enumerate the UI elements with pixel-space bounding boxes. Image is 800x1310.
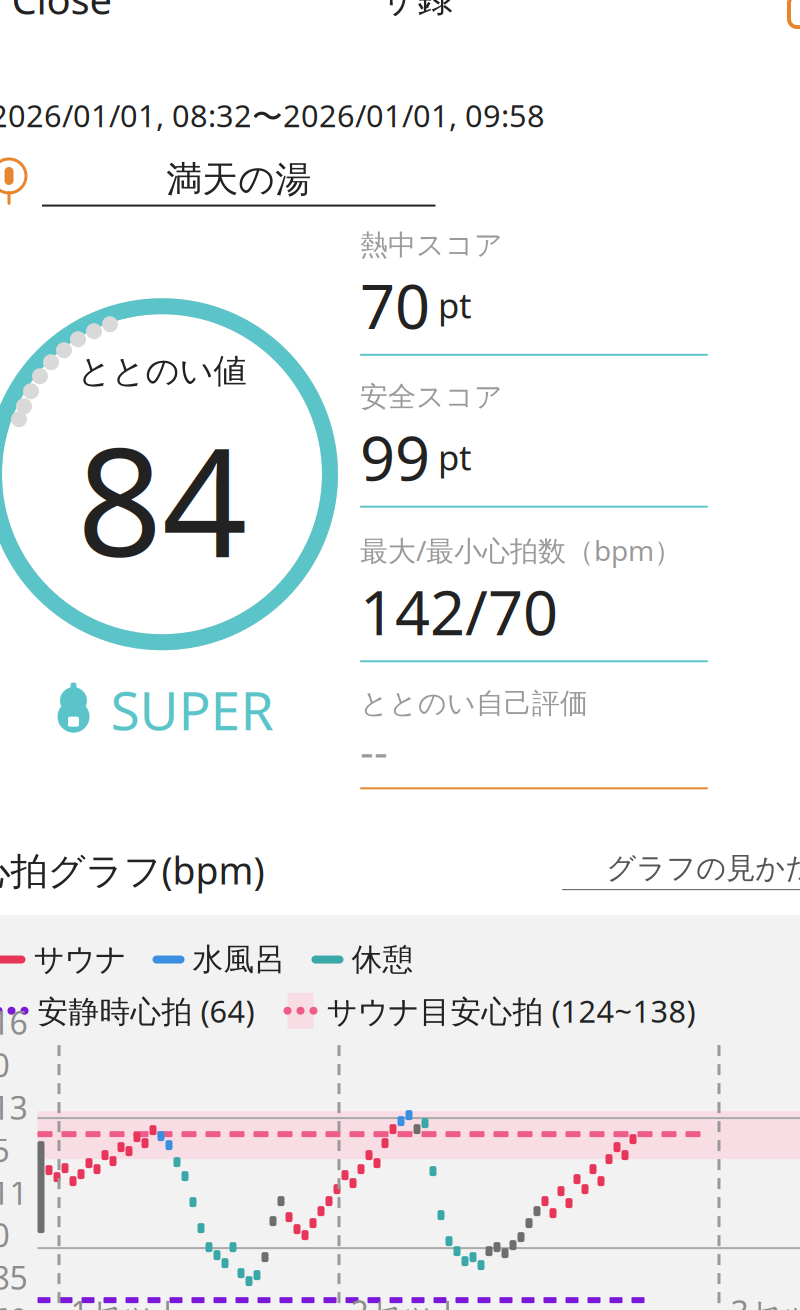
staticText: 3セット xyxy=(730,1291,800,1310)
button[interactable]: 満天の湯 xyxy=(42,157,435,207)
staticText: 85 xyxy=(0,1256,27,1299)
staticText: 安静時心拍 (64) xyxy=(37,990,254,1031)
button[interactable]: グラフの見かた xyxy=(562,850,800,890)
staticText: 2セット xyxy=(350,1291,467,1310)
staticText: 心拍グラフ(bpm) xyxy=(0,845,264,895)
staticText: 99 xyxy=(360,416,430,498)
staticText: pt xyxy=(438,282,472,328)
staticText: 熱中スコア xyxy=(360,228,503,262)
button[interactable]: Close xyxy=(0,0,142,43)
staticText: 水風呂 xyxy=(192,941,285,978)
staticText: 142/70 xyxy=(360,571,558,652)
staticText: ととのい自己評価 xyxy=(360,686,588,721)
staticText: Close xyxy=(11,0,112,26)
staticText: 最大/最小心拍数（bpm） xyxy=(360,532,682,569)
staticText: ととのい値 xyxy=(77,351,246,391)
staticText: 満天の湯 xyxy=(166,157,311,202)
staticText: グラフの見かた xyxy=(606,850,800,886)
staticText: 2026/01/01, 08:32〜2026/01/01, 09:58 xyxy=(0,95,545,136)
staticText: サウナ目安心拍 (124~138) xyxy=(326,990,695,1031)
staticText: サウナ xyxy=(33,941,126,978)
staticText: 安全スコア xyxy=(360,380,503,414)
staticText: SUPER xyxy=(110,674,273,745)
button[interactable]: Share xyxy=(763,0,800,43)
staticText: 84 xyxy=(77,400,247,598)
staticText: 160 xyxy=(0,1001,27,1086)
staticText: 60 xyxy=(0,1299,27,1310)
staticText: 70 xyxy=(360,264,430,346)
staticText: サ録 xyxy=(380,0,453,21)
staticText: 110 xyxy=(0,1171,27,1256)
staticText: pt xyxy=(438,434,472,480)
staticText: 休憩 xyxy=(351,941,413,978)
staticText: -- xyxy=(360,723,388,779)
staticText: 1セット xyxy=(70,1291,187,1310)
staticText: 135 xyxy=(0,1086,27,1171)
